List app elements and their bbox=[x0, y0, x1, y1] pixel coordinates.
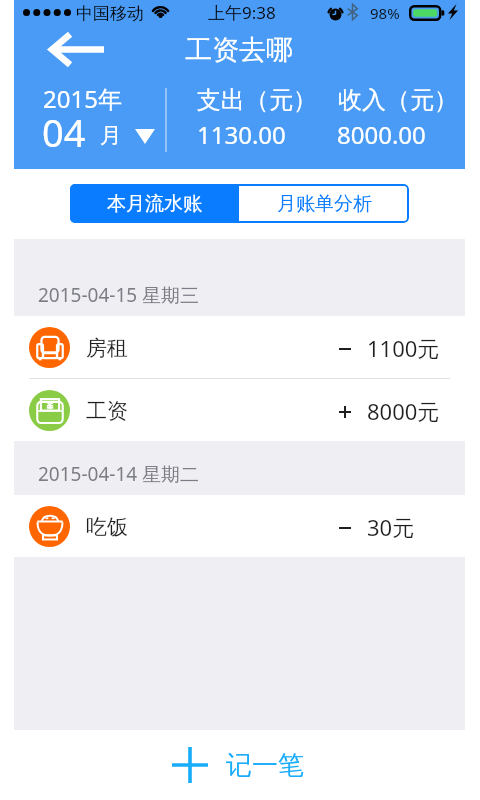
staticText: 工资 bbox=[86, 398, 128, 424]
staticText: 2015-04-14 星期二 bbox=[38, 461, 200, 487]
staticText: 04 bbox=[42, 106, 86, 158]
staticText: 上午9:38 bbox=[208, 1, 276, 24]
staticText: 月账单分析 bbox=[277, 192, 372, 216]
staticText: 月 bbox=[100, 122, 122, 150]
staticText: 30元 bbox=[367, 512, 415, 542]
button[interactable] bbox=[30, 80, 175, 162]
staticText: 中国移动 bbox=[76, 3, 144, 24]
button[interactable]: 吃饭 bbox=[14, 495, 465, 557]
staticText: 吃饭 bbox=[86, 514, 128, 540]
staticText: 8000.00 bbox=[337, 118, 426, 151]
button[interactable]: Back bbox=[45, 27, 109, 71]
staticText: 本月流水账 bbox=[107, 192, 202, 216]
staticText: 8000元 bbox=[367, 396, 440, 426]
staticText: 2015-04-15 星期三 bbox=[38, 282, 200, 308]
staticText: 1130.00 bbox=[197, 118, 286, 151]
staticText: 记一笔 bbox=[226, 749, 304, 782]
button[interactable]: 房租 bbox=[14, 316, 465, 379]
staticText: 收入（元） bbox=[338, 85, 458, 115]
button[interactable]: 本月流水账 bbox=[70, 184, 239, 223]
staticText: 房租 bbox=[86, 335, 128, 361]
button[interactable]: 工资 bbox=[14, 379, 465, 441]
button[interactable]: 记一笔 bbox=[14, 730, 465, 800]
staticText: 工资去哪 bbox=[185, 33, 293, 67]
staticText: 98% bbox=[370, 3, 400, 23]
staticText: 2015年 bbox=[43, 82, 122, 115]
staticText: 支出（元） bbox=[197, 85, 317, 115]
button[interactable]: 月账单分析 bbox=[239, 184, 409, 223]
staticText: 1100元 bbox=[367, 333, 440, 363]
